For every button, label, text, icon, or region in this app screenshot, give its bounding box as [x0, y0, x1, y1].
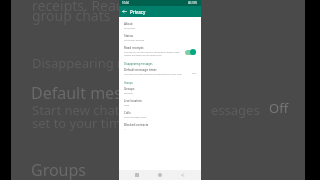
button[interactable]: Read receipts: [119, 44, 201, 59]
button[interactable]: Default message timer: [119, 66, 201, 78]
staticText: Read receipts: [124, 46, 144, 50]
staticText: Off: [269, 99, 289, 117]
staticText: Silence unknown callers: [124, 116, 147, 119]
staticText: 4G 74%: [188, 1, 198, 5]
button[interactable]: Back: [178, 170, 188, 180]
staticText: Live location: [124, 99, 143, 103]
staticText: Calls: [124, 111, 131, 115]
staticText: My contacts excluded: [124, 39, 145, 42]
staticText: Default message timer: [124, 68, 157, 72]
staticText: Groups: [124, 87, 135, 91]
staticText: If turned off, you won't send or receive…: [124, 51, 182, 57]
staticText: Groups: [31, 159, 87, 180]
staticText: Off: [192, 71, 196, 74]
staticText: 10:04: [122, 1, 129, 5]
staticText: Groups: [124, 81, 133, 84]
button[interactable]: Back: [119, 6, 130, 17]
button[interactable]: Status: [119, 32, 201, 44]
staticText: None: [124, 104, 130, 107]
button[interactable]: Home: [155, 170, 165, 180]
staticText: 1: [124, 128, 126, 131]
staticText: set to your timer: [32, 114, 134, 132]
button[interactable]: Live location: [119, 97, 201, 109]
button[interactable]: Blocked contacts: [119, 121, 201, 133]
staticText: About: [124, 22, 133, 26]
staticText: receipts. Read rec: [32, 0, 149, 15]
staticText: Default message: [31, 82, 158, 104]
staticText: Everyone: [124, 92, 133, 95]
staticText: group chats: [32, 6, 111, 25]
staticText: Status: [124, 34, 134, 38]
staticText: essages: [211, 101, 260, 119]
staticText: Disappearing messages: [124, 62, 153, 65]
staticText: Start new chats w: [32, 101, 140, 119]
button[interactable]: Read receipts toggle: [185, 49, 196, 55]
staticText: Start new chats with disappearing messag…: [124, 73, 182, 76]
button[interactable]: Groups: [119, 85, 201, 97]
staticText: Privacy: [130, 9, 146, 15]
button[interactable]: Calls: [119, 109, 201, 121]
staticText: Disappearing messages: [32, 54, 178, 72]
staticText: My contacts: [124, 27, 136, 30]
button[interactable]: Recents: [132, 170, 142, 180]
staticText: Blocked contacts: [124, 123, 149, 127]
button[interactable]: About: [119, 20, 201, 32]
